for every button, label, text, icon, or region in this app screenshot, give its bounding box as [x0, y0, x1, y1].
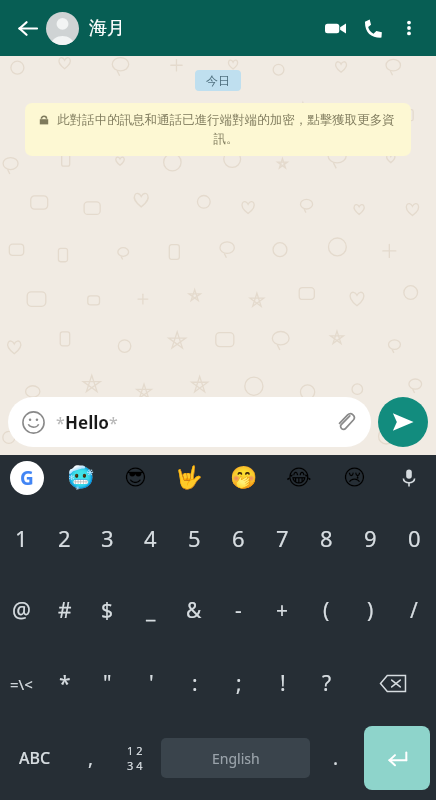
staticText: _: [146, 596, 156, 625]
staticText: *: [109, 412, 118, 434]
button[interactable]: Back: [10, 11, 44, 45]
staticText: 🤭: [230, 465, 258, 491]
staticText: G: [20, 465, 34, 491]
staticText: 9: [364, 523, 377, 553]
staticText: +: [276, 596, 289, 625]
staticText: *: [56, 412, 65, 434]
staticText: Hello: [65, 411, 109, 434]
button[interactable]: 9: [348, 501, 392, 574]
button[interactable]: ABC: [0, 720, 69, 796]
staticText: #: [58, 596, 72, 625]
button[interactable]: (: [304, 574, 348, 647]
button[interactable]: 1 2: [113, 720, 157, 796]
staticText: 🥶: [67, 465, 95, 491]
button[interactable]: :: [173, 647, 217, 720]
staticText: 5: [188, 523, 201, 553]
staticText: 今日: [206, 73, 230, 88]
staticText: !: [280, 669, 286, 698]
staticText: /: [410, 596, 418, 625]
button[interactable]: ,: [69, 720, 113, 796]
button[interactable]: 2: [43, 501, 86, 574]
staticText: ): [367, 596, 374, 625]
button[interactable]: 此對話中的訊息和通話已進行端對端的加密，點擊獲取更多資訊。: [25, 103, 411, 156]
staticText: $: [101, 596, 114, 625]
staticText: &: [186, 596, 202, 625]
button[interactable]: +: [260, 574, 304, 647]
button[interactable]: 8: [304, 501, 348, 574]
staticText: :: [192, 669, 198, 698]
staticText: 6: [232, 523, 245, 553]
button[interactable]: Send: [378, 397, 428, 447]
button[interactable]: Emoji: [8, 397, 371, 447]
button[interactable]: 今日: [195, 70, 241, 91]
button[interactable]: $: [86, 574, 129, 647]
button[interactable]: 6: [216, 501, 260, 574]
button[interactable]: &: [172, 574, 216, 647]
staticText: 1: [15, 523, 28, 553]
button[interactable]: 5: [172, 501, 216, 574]
button[interactable]: Google: [10, 461, 44, 495]
button[interactable]: 🤟: [172, 461, 206, 495]
staticText: -: [235, 596, 242, 625]
staticText: 😢: [343, 465, 366, 491]
staticText: ABC: [19, 747, 51, 769]
button[interactable]: ": [86, 647, 129, 720]
staticText: .: [333, 745, 339, 771]
button[interactable]: Video call: [316, 9, 354, 47]
button[interactable]: Enter: [364, 726, 430, 790]
staticText: 3 4: [127, 758, 143, 773]
button[interactable]: 7: [260, 501, 304, 574]
staticText: 🤟: [175, 465, 203, 491]
button[interactable]: 1: [0, 501, 43, 574]
staticText: 😎: [124, 465, 147, 491]
button[interactable]: More options: [392, 11, 426, 45]
button[interactable]: 🤭: [227, 461, 261, 495]
staticText: ': [149, 669, 154, 698]
button[interactable]: 😢: [337, 461, 371, 495]
staticText: 2: [58, 523, 71, 553]
staticText: 😂: [286, 465, 312, 491]
button[interactable]: 0: [392, 501, 436, 574]
staticText: ,: [88, 745, 94, 771]
button[interactable]: Call: [354, 9, 392, 47]
staticText: 1 2: [127, 743, 143, 758]
button[interactable]: .: [314, 720, 358, 796]
button[interactable]: ;: [217, 647, 261, 720]
button[interactable]: 😎: [118, 461, 152, 495]
button[interactable]: 🥶: [64, 461, 98, 495]
button[interactable]: English: [161, 738, 310, 778]
staticText: 4: [144, 523, 157, 553]
button[interactable]: /: [392, 574, 436, 647]
staticText: (: [323, 596, 330, 625]
button[interactable]: 3: [86, 501, 129, 574]
button[interactable]: ?: [305, 647, 349, 720]
staticText: @: [12, 596, 31, 625]
button[interactable]: ): [348, 574, 392, 647]
staticText: 0: [408, 523, 421, 553]
button[interactable]: #: [43, 574, 86, 647]
button[interactable]: !: [261, 647, 305, 720]
staticText: *: [59, 669, 71, 698]
button[interactable]: *: [43, 647, 86, 720]
button[interactable]: Emoji: [20, 409, 46, 435]
staticText: ": [103, 669, 112, 698]
button[interactable]: Backspace: [349, 647, 436, 720]
button[interactable]: Voice input: [392, 461, 426, 495]
staticText: 此對話中的訊息和通話已進行端對端的加密，點擊獲取更多資訊。: [55, 112, 397, 147]
button[interactable]: @: [0, 574, 43, 647]
button[interactable]: -: [216, 574, 260, 647]
staticText: English: [212, 749, 260, 768]
button[interactable]: ': [129, 647, 173, 720]
staticText: ?: [322, 669, 332, 698]
staticText: 海月: [89, 17, 125, 40]
staticText: ;: [236, 669, 242, 698]
staticText: =\<: [10, 674, 33, 694]
staticText: 7: [276, 523, 289, 553]
button[interactable]: =\<: [0, 647, 43, 720]
button[interactable]: 😂: [282, 461, 316, 495]
button[interactable]: 4: [129, 501, 172, 574]
staticText: 8: [320, 523, 333, 553]
staticText: 3: [101, 523, 114, 553]
button[interactable]: _: [129, 574, 172, 647]
button[interactable]: Attach: [331, 408, 359, 436]
